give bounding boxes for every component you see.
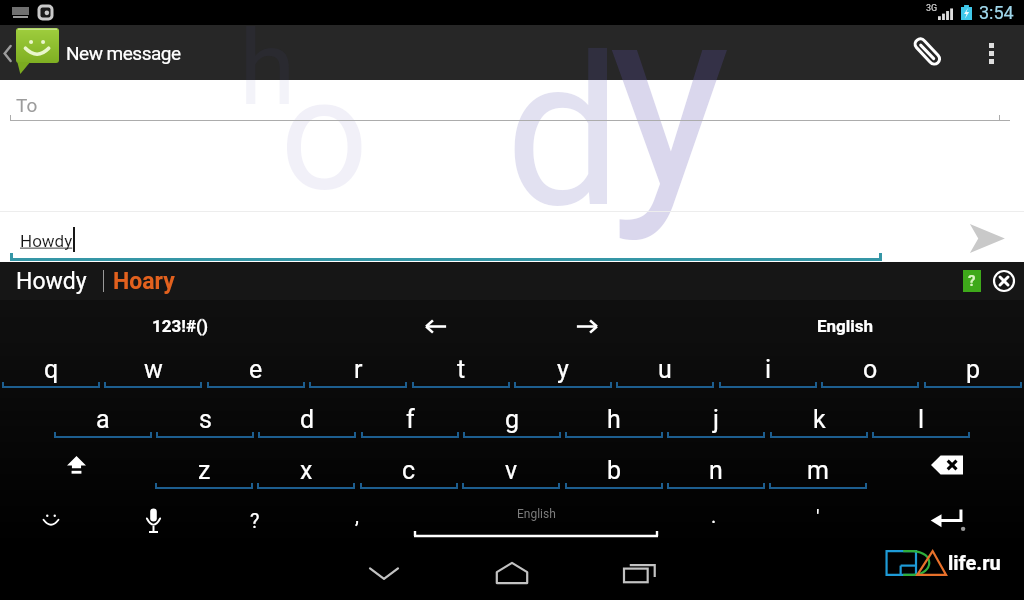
staticText: h — [607, 405, 621, 434]
button[interactable]: Close suggestions — [992, 269, 1016, 293]
staticText: x — [300, 456, 313, 485]
button[interactable]: ? — [222, 494, 288, 546]
button[interactable]: Emoji — [18, 494, 84, 546]
staticText: h — [239, 8, 296, 129]
staticText: i — [765, 355, 772, 384]
button[interactable]: x — [255, 439, 357, 491]
staticText: e — [249, 355, 263, 384]
button[interactable]: Howdy — [0, 262, 103, 300]
button[interactable]: Howdy — [0, 212, 950, 265]
button[interactable]: More options — [958, 26, 1024, 80]
button[interactable]: f — [359, 388, 461, 440]
button[interactable]: English — [790, 300, 900, 352]
staticText: j — [713, 405, 719, 434]
button[interactable]: Help — [963, 270, 981, 292]
button[interactable]: g — [461, 388, 563, 440]
staticText: p — [966, 355, 981, 384]
button[interactable]: . — [681, 494, 747, 546]
button[interactable]: o — [819, 338, 921, 390]
button[interactable]: k — [768, 388, 870, 440]
staticText: g — [505, 405, 520, 434]
staticText: . — [711, 504, 717, 527]
button[interactable]: Home — [480, 546, 544, 600]
button[interactable]: z — [153, 439, 255, 491]
button[interactable]: d — [256, 388, 358, 440]
button[interactable]: Attach — [896, 26, 958, 80]
staticText: ? — [968, 272, 976, 290]
staticText: k — [813, 405, 826, 434]
button[interactable]: ' — [785, 494, 851, 546]
button[interactable]: u — [614, 338, 716, 390]
button[interactable]: Shift — [0, 439, 153, 491]
button[interactable]: Send — [950, 212, 1024, 265]
button[interactable]: i — [717, 338, 819, 390]
button[interactable]: q — [0, 338, 102, 390]
button[interactable]: p — [922, 338, 1024, 390]
staticText: 3G — [926, 3, 938, 14]
staticText: n — [709, 456, 723, 485]
button[interactable]: Hoary — [99, 262, 189, 300]
button[interactable]: Voice input — [120, 494, 186, 546]
button[interactable]: , — [324, 494, 390, 546]
button[interactable]: e — [205, 338, 307, 390]
button[interactable]: n — [665, 439, 767, 491]
staticText: z — [198, 456, 211, 485]
staticText: f — [406, 405, 415, 434]
button[interactable]: w — [102, 338, 204, 390]
staticText: c — [402, 456, 416, 485]
staticText: 123!#() — [152, 316, 208, 336]
staticText: y — [609, 0, 731, 247]
button[interactable]: b — [563, 439, 665, 491]
staticText: a — [96, 405, 110, 434]
button[interactable]: New message — [0, 25, 181, 80]
staticText: l — [918, 405, 925, 434]
button[interactable]: Hide keyboard — [352, 546, 416, 600]
button[interactable]: v — [460, 439, 562, 491]
button[interactable]: Move cursor right — [561, 300, 613, 352]
staticText: u — [658, 355, 672, 384]
button[interactable]: a — [52, 388, 154, 440]
staticText: w — [144, 355, 163, 384]
staticText: m — [807, 456, 829, 485]
button[interactable]: t — [410, 338, 512, 390]
button[interactable]: y — [512, 338, 614, 390]
staticText: s — [199, 405, 212, 434]
staticText: life.ru — [948, 551, 1001, 574]
button[interactable]: Enter — [881, 494, 1015, 546]
button[interactable]: s — [154, 388, 256, 440]
staticText: New message — [66, 42, 181, 64]
staticText: d — [505, 12, 622, 255]
button[interactable]: h — [563, 388, 665, 440]
button[interactable]: l — [870, 388, 972, 440]
button[interactable]: To — [0, 80, 1024, 120]
staticText: 3:54 — [979, 2, 1014, 23]
staticText: English — [817, 316, 874, 336]
button[interactable]: Move cursor left — [410, 300, 462, 352]
button[interactable]: Recent apps — [608, 546, 672, 600]
staticText: Howdy — [16, 268, 87, 295]
staticText: v — [505, 456, 518, 485]
button[interactable]: English — [400, 494, 672, 546]
staticText: , — [355, 504, 359, 527]
staticText: Hoary — [113, 268, 175, 295]
button[interactable]: r — [307, 338, 409, 390]
button[interactable]: c — [358, 439, 460, 491]
staticText: ? — [250, 509, 260, 532]
button[interactable]: Delete — [870, 439, 1024, 491]
staticText: b — [607, 456, 622, 485]
staticText: o — [280, 44, 369, 226]
button[interactable]: j — [665, 388, 767, 440]
staticText: English — [517, 507, 556, 521]
staticText: d — [300, 405, 315, 434]
button[interactable]: 123!#() — [125, 300, 235, 352]
staticText: t — [457, 355, 466, 384]
staticText: ' — [816, 505, 820, 528]
staticText: q — [44, 355, 59, 384]
staticText: y — [557, 355, 569, 384]
button[interactable]: m — [767, 439, 869, 491]
staticText: r — [354, 355, 363, 384]
staticText: To — [16, 94, 38, 116]
staticText: Howdy — [20, 231, 73, 251]
staticText: o — [863, 355, 878, 384]
